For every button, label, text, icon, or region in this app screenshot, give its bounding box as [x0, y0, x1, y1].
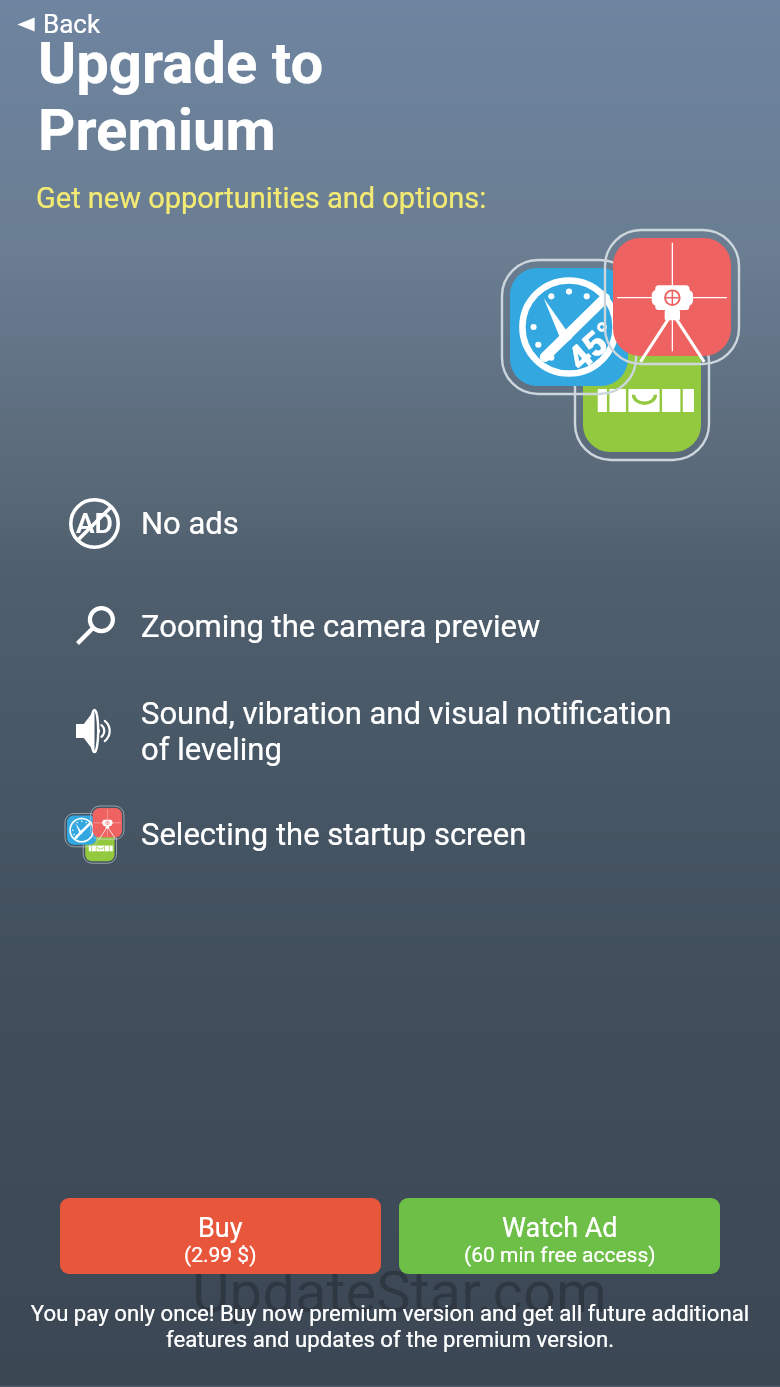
staticText: (2.99 $)	[184, 1243, 257, 1268]
staticText: Sound, vibration and visual notification…	[141, 695, 672, 768]
staticText: UpdateStar.com	[192, 1258, 607, 1326]
staticText: Get new opportunities and options:	[36, 181, 487, 215]
staticText: No ads	[141, 505, 239, 541]
staticText: AD	[76, 507, 113, 540]
button[interactable]: Watch Ad	[399, 1198, 720, 1274]
staticText: You pay only once! Buy now premium versi…	[14, 1300, 766, 1352]
staticText: Selecting the startup screen	[141, 816, 527, 852]
staticText: Watch Ad	[502, 1212, 618, 1244]
staticText: (60 min free access)	[464, 1243, 656, 1268]
staticText: Back	[43, 9, 101, 39]
staticText: 45°	[559, 313, 626, 379]
staticText: Zooming the camera preview	[141, 608, 541, 644]
button[interactable]: Buy	[60, 1198, 381, 1274]
button[interactable]: Back	[9, 5, 109, 43]
staticText: Buy	[198, 1212, 243, 1244]
staticText: Upgrade to Premium	[38, 29, 324, 164]
